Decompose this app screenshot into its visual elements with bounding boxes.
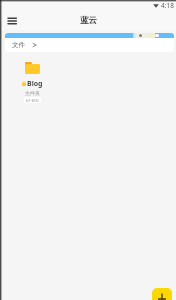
staticText: 文件 [12,41,25,49]
button[interactable]: 文件 [12,41,25,49]
staticText: 蓝云 [80,15,97,26]
button[interactable]: 6小时前 [24,97,41,103]
staticText: 6小时前 [26,98,39,103]
staticText: 文件夹 [25,90,40,96]
button[interactable]: Menu [4,13,20,29]
staticText: 4:18 [161,1,174,10]
button[interactable]: Blog [13,62,51,103]
button[interactable]: Add [152,288,172,300]
staticText: Blog [27,79,43,89]
